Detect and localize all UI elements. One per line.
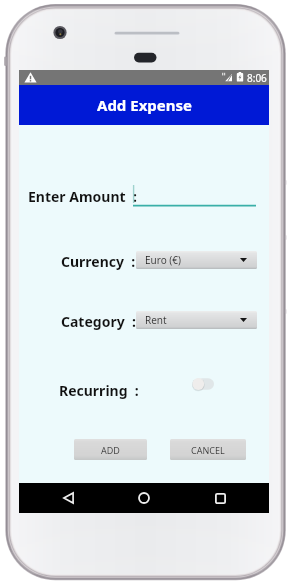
button[interactable]: CANCEL: [170, 439, 246, 460]
staticText: CANCEL: [191, 444, 225, 456]
staticText: 8:06: [247, 71, 267, 85]
button[interactable]: Rent: [136, 311, 257, 329]
button[interactable]: Back: [48, 486, 88, 510]
staticText: ADD: [101, 444, 120, 456]
staticText: Category :: [61, 312, 136, 331]
staticText: Euro (€): [145, 253, 182, 267]
button[interactable]: Home: [124, 486, 164, 510]
button[interactable]: Add Expense: [19, 85, 269, 125]
button[interactable]: ADD: [74, 439, 147, 460]
staticText: Rent: [145, 313, 167, 327]
staticText: Currency :: [61, 252, 136, 271]
button[interactable]: Euro (€): [136, 251, 257, 269]
staticText: Enter Amount :: [28, 187, 137, 206]
button[interactable]: Recurring toggle: [192, 374, 222, 394]
staticText: Recurring :: [59, 381, 139, 400]
button[interactable]: Recents: [200, 486, 240, 510]
staticText: Add Expense: [97, 95, 192, 115]
